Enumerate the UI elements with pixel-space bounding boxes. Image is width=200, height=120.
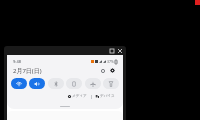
button[interactable]: History xyxy=(98,66,107,75)
staticText: 9:48 xyxy=(13,59,21,64)
button[interactable]: Bluetooth xyxy=(48,78,64,89)
button[interactable]: Maximize xyxy=(108,47,116,55)
staticText: 2月7日(日) xyxy=(13,67,42,75)
button[interactable]: デバイス xyxy=(94,93,117,100)
button[interactable]: Auto rotate xyxy=(66,78,82,89)
button[interactable]: Close xyxy=(116,47,124,55)
staticText: メディア xyxy=(72,94,87,99)
button[interactable]: Settings xyxy=(108,66,117,75)
button[interactable]: Flashlight xyxy=(103,78,119,89)
button[interactable]: Airplane mode xyxy=(85,78,101,89)
staticText: デバイス xyxy=(100,94,115,99)
staticText: 37% xyxy=(107,59,114,64)
button[interactable]: メディア xyxy=(66,93,89,100)
button[interactable]: Sound xyxy=(29,78,45,89)
button[interactable]: Wi-Fi xyxy=(11,78,27,89)
